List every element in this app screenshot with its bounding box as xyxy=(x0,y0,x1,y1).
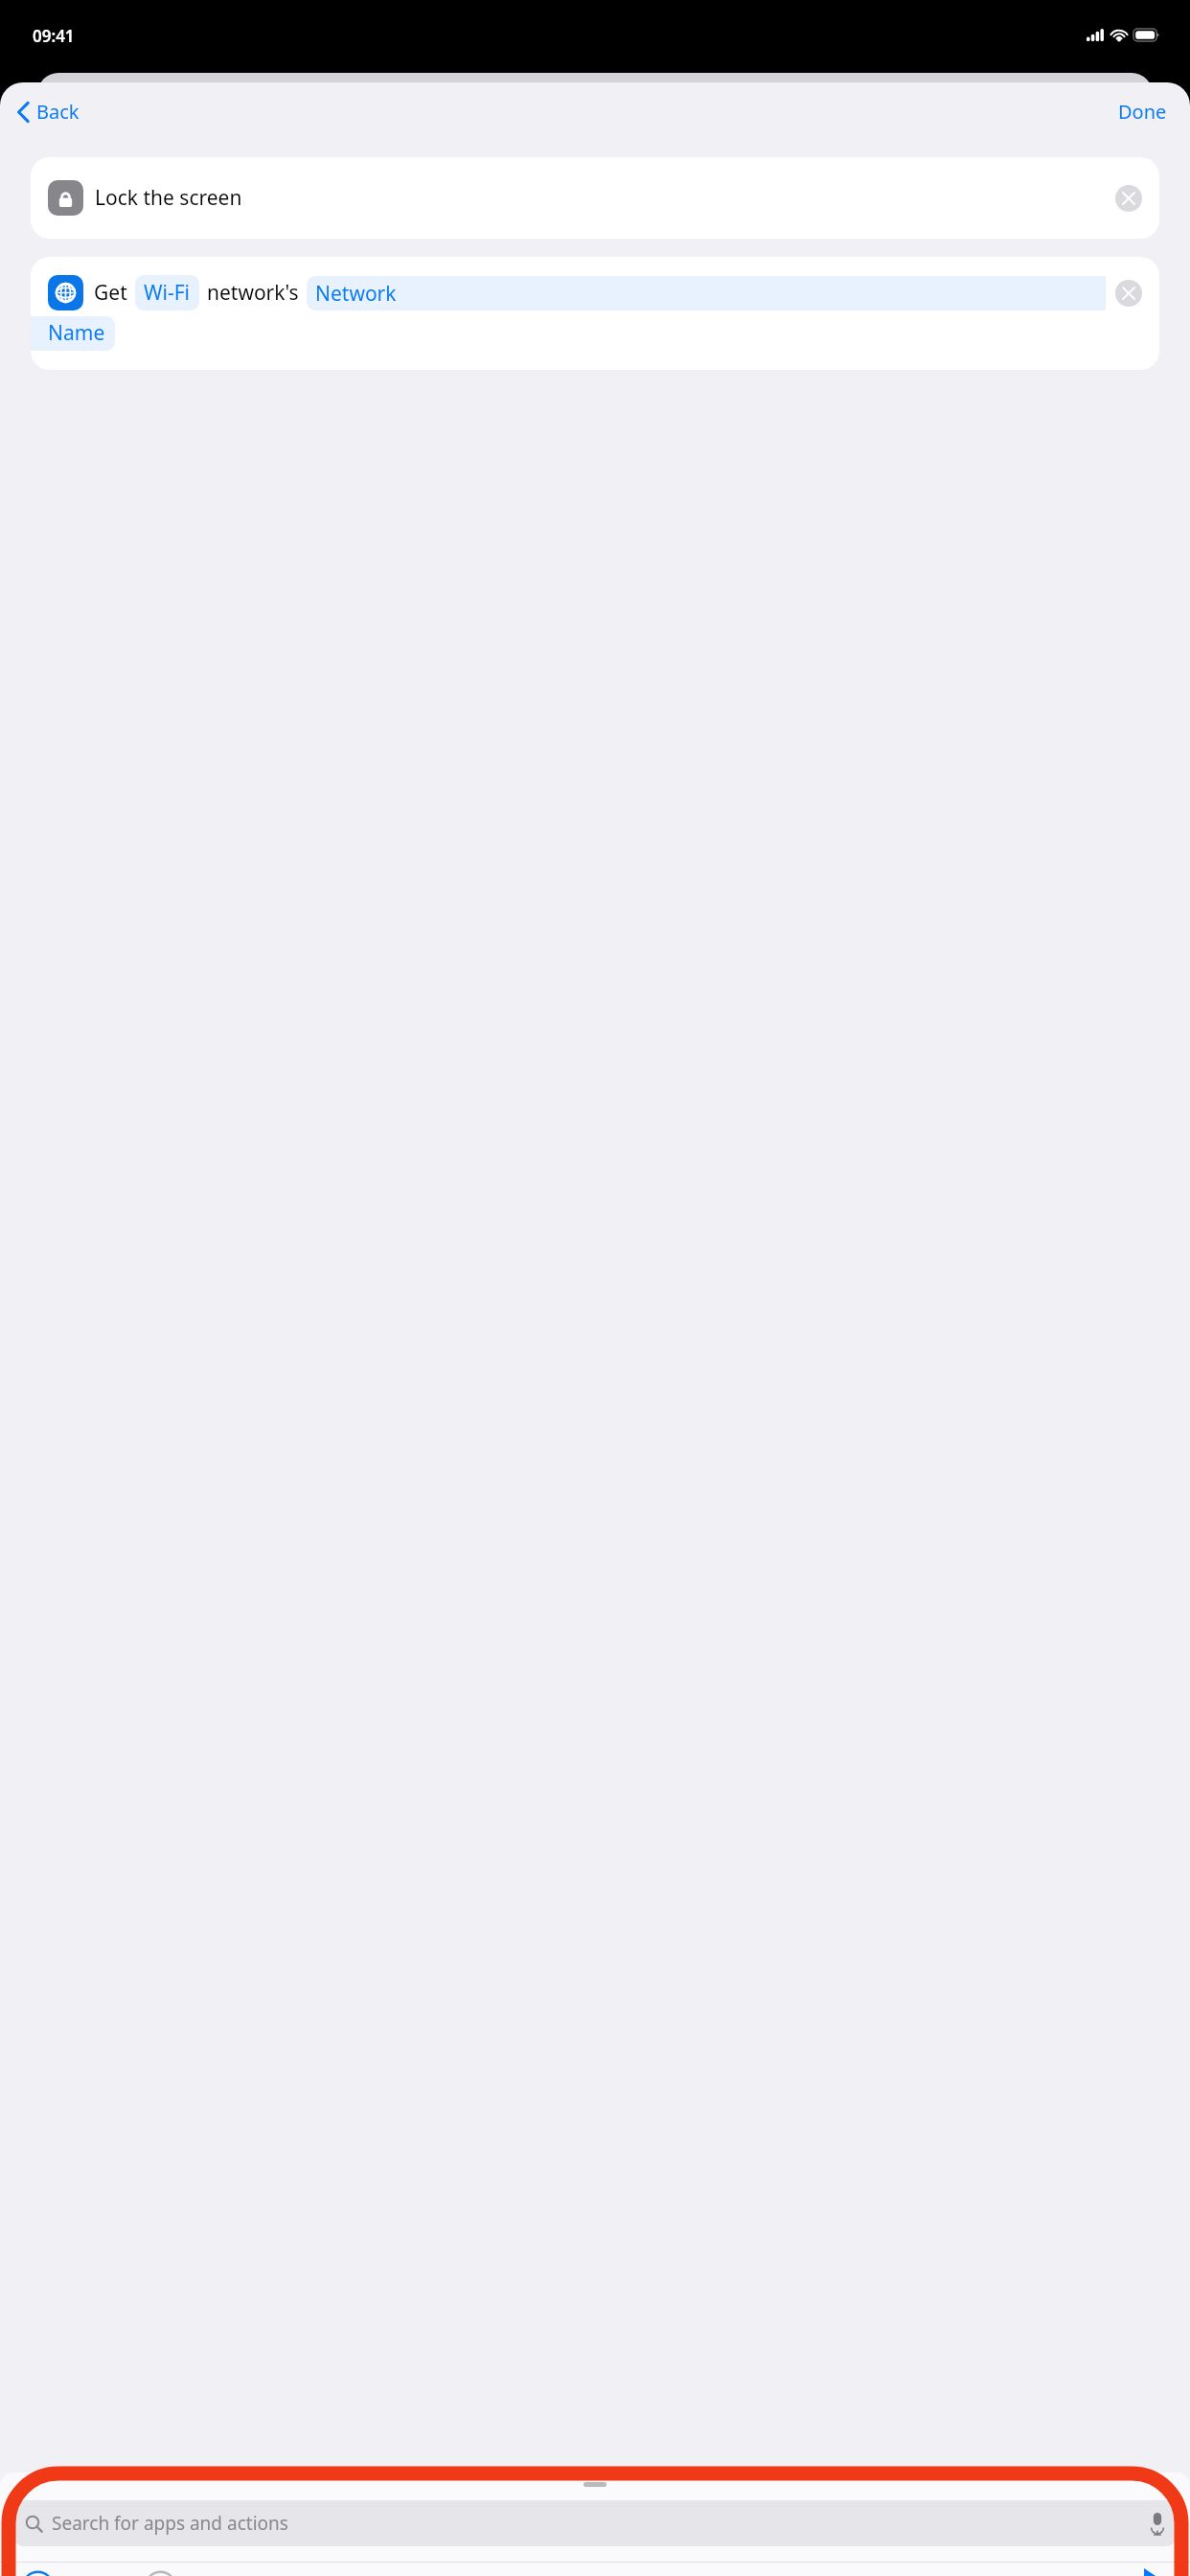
staticText: 09:41 xyxy=(33,25,75,47)
button[interactable]: Voice search xyxy=(1150,2513,1165,2535)
button[interactable]: Get xyxy=(31,257,1159,370)
button[interactable]: Wi-Fi xyxy=(135,275,199,310)
button[interactable]: Remove action xyxy=(1115,185,1142,212)
button[interactable]: Network xyxy=(307,276,1106,310)
staticText: Name xyxy=(48,319,105,347)
staticText: Search for apps and actions xyxy=(52,2511,288,2536)
staticText: Lock the screen xyxy=(95,184,242,212)
button[interactable]: Search for apps and actions xyxy=(13,2500,1177,2546)
button[interactable]: Name xyxy=(31,316,115,351)
staticText: Back xyxy=(36,99,80,125)
staticText: network's xyxy=(207,279,299,307)
button[interactable]: Lock the screen xyxy=(31,157,1159,239)
button[interactable]: Undo xyxy=(21,2570,55,2576)
button[interactable]: Run xyxy=(1142,2568,1167,2576)
button[interactable]: Remove action xyxy=(1115,280,1142,307)
staticText: Done xyxy=(1118,99,1167,125)
staticText: Get xyxy=(94,279,127,307)
staticText: Wi-Fi xyxy=(144,279,191,307)
button[interactable]: Redo xyxy=(144,2570,177,2576)
button[interactable]: Done xyxy=(1112,95,1173,128)
staticText: Network xyxy=(315,280,397,308)
button[interactable]: Back xyxy=(11,95,85,128)
